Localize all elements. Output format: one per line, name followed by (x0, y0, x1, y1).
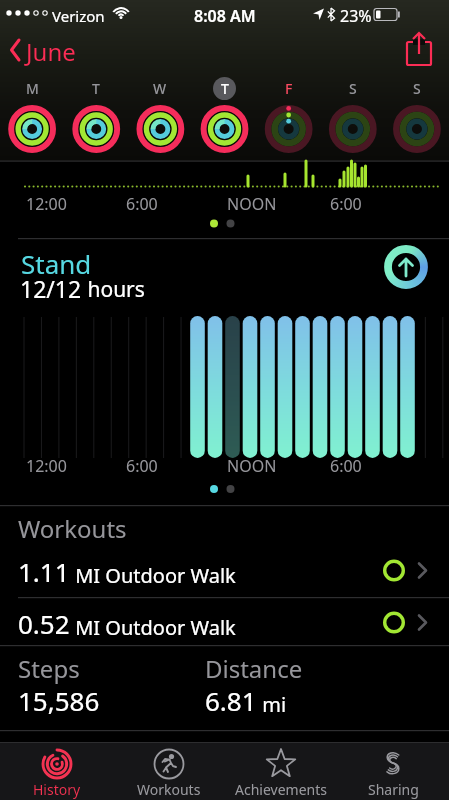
staticText: NOON (227, 193, 277, 215)
button[interactable]: 1.11 (0, 550, 449, 596)
button[interactable] (134, 74, 186, 156)
button[interactable] (6, 74, 58, 156)
staticText: W (153, 79, 167, 98)
button[interactable] (400, 28, 444, 70)
staticText: Workouts (137, 780, 201, 799)
staticText: 12:00 (26, 455, 67, 477)
staticText: mi (257, 691, 287, 718)
staticText: 1.11 (18, 554, 70, 589)
button[interactable]: 0.52 (0, 598, 449, 644)
staticText: Distance (205, 652, 303, 685)
staticText: F (285, 79, 293, 98)
button[interactable]: Sharing (337, 742, 449, 800)
staticText: MI Outdoor Walk (70, 562, 236, 589)
staticText: MI Outdoor Walk (70, 614, 236, 641)
staticText: 15,586 (18, 683, 100, 718)
staticText: NOON (227, 455, 277, 477)
button[interactable] (327, 74, 379, 156)
button[interactable] (70, 74, 122, 156)
staticText: 23% (340, 5, 372, 27)
staticText: M (26, 79, 39, 98)
staticText: S (413, 79, 421, 98)
button[interactable] (391, 74, 443, 156)
staticText: 12:00 (26, 193, 67, 215)
button[interactable] (384, 245, 428, 289)
button[interactable]: Workouts (113, 742, 225, 800)
staticText: Sharing (368, 780, 419, 799)
staticText: T (221, 79, 229, 98)
staticText: 6.81 (205, 683, 257, 718)
staticText: 6:00 (330, 193, 362, 215)
staticText: 6:00 (330, 455, 362, 477)
staticText: hours (82, 275, 145, 304)
button[interactable] (199, 74, 251, 156)
button[interactable]: Achievements (225, 742, 337, 800)
staticText: June (26, 35, 76, 68)
staticText: T (92, 79, 100, 98)
staticText: 0.52 (18, 606, 70, 641)
staticText: 12/12 (20, 273, 82, 304)
button[interactable] (263, 74, 315, 156)
staticText: Achievements (235, 780, 327, 799)
staticText: S (349, 79, 357, 98)
button[interactable]: June (4, 33, 100, 67)
staticText: Stand (21, 246, 92, 281)
staticText: Verizon (52, 6, 105, 26)
staticText: 6:00 (126, 193, 158, 215)
button[interactable]: History (0, 742, 113, 800)
staticText: Steps (18, 652, 80, 685)
staticText: Workouts (18, 512, 127, 545)
staticText: 6:00 (126, 455, 158, 477)
staticText: History (33, 780, 81, 799)
staticText: 8:08 AM (194, 5, 256, 27)
